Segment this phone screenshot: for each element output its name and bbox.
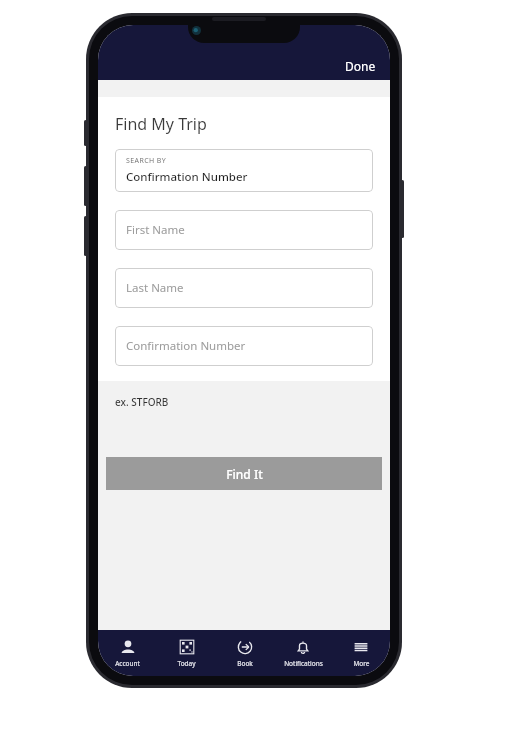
- button[interactable]: Book: [216, 630, 274, 676]
- staticText: First Name: [126, 222, 185, 238]
- button[interactable]: Notifications: [274, 630, 332, 676]
- button[interactable]: Find It: [106, 457, 382, 490]
- button[interactable]: More: [332, 630, 390, 676]
- staticText: Account: [115, 659, 140, 668]
- staticText: Find My Trip: [115, 113, 207, 135]
- staticText: Last Name: [126, 280, 184, 296]
- staticText: Confirmation Number: [126, 169, 248, 185]
- button[interactable]: Confirmation Number: [115, 326, 373, 366]
- staticText: SEARCH BY: [126, 156, 167, 166]
- button[interactable]: Last Name: [115, 268, 373, 308]
- button[interactable]: Done: [331, 52, 390, 80]
- button[interactable]: Account: [98, 630, 157, 676]
- staticText: Confirmation Number: [126, 338, 246, 354]
- button[interactable]: First Name: [115, 210, 373, 250]
- staticText: Today: [177, 659, 196, 668]
- button[interactable]: SEARCH BY: [115, 149, 373, 192]
- staticText: More: [353, 659, 370, 668]
- staticText: Notifications: [284, 659, 323, 668]
- button[interactable]: Today: [157, 630, 216, 676]
- staticText: ex. STFORB: [115, 395, 169, 409]
- staticText: Done: [345, 58, 376, 74]
- staticText: Find It: [226, 466, 263, 482]
- staticText: Book: [237, 659, 253, 668]
